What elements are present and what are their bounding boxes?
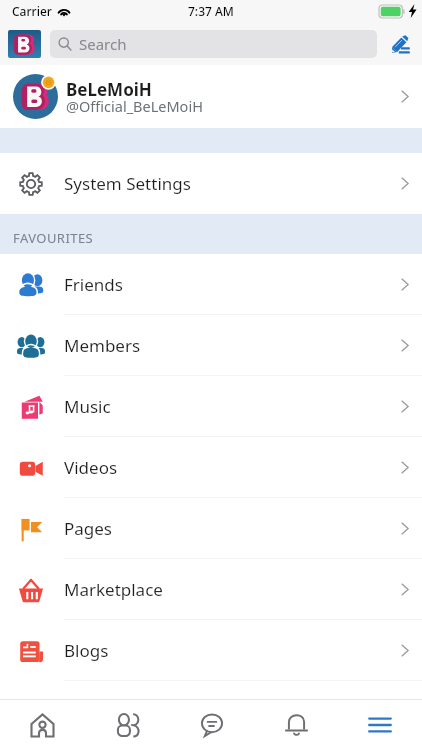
button[interactable]: System Settings — [0, 153, 422, 214]
staticText: Videos — [64, 456, 118, 479]
button[interactable]: BeLeMoiH — [0, 65, 422, 128]
staticText: Blogs — [64, 639, 109, 662]
staticText: Friends — [64, 273, 123, 296]
staticText: 7:37 AM — [188, 3, 234, 19]
button[interactable]: Notifications — [254, 700, 338, 750]
button[interactable]: Home — [0, 700, 85, 750]
staticText: Marketplace — [64, 578, 163, 601]
staticText: System Settings — [64, 172, 191, 195]
button[interactable]: App logo — [8, 30, 41, 58]
staticText: Music — [64, 395, 111, 418]
button[interactable]: Search — [50, 30, 377, 58]
button[interactable]: Videos — [0, 437, 422, 498]
button[interactable]: Pages — [0, 498, 422, 559]
staticText: Pages — [64, 517, 113, 540]
button[interactable]: Messages — [170, 700, 254, 750]
staticText: Carrier — [12, 3, 52, 19]
button[interactable]: Compose — [386, 29, 416, 59]
staticText: FAVOURITES — [13, 229, 94, 247]
staticText: @Official_BeLeMoiH — [66, 96, 203, 116]
button[interactable]: Menu — [338, 700, 422, 750]
staticText: Members — [64, 334, 141, 357]
button[interactable]: Blogs — [0, 620, 422, 681]
button[interactable]: Friends — [0, 254, 422, 315]
button[interactable]: Music — [0, 376, 422, 437]
button[interactable]: Marketplace — [0, 559, 422, 620]
staticText: BeLeMoiH — [66, 78, 152, 101]
staticText: Search — [79, 34, 127, 54]
button[interactable]: Members — [0, 315, 422, 376]
button[interactable]: People — [85, 700, 170, 750]
